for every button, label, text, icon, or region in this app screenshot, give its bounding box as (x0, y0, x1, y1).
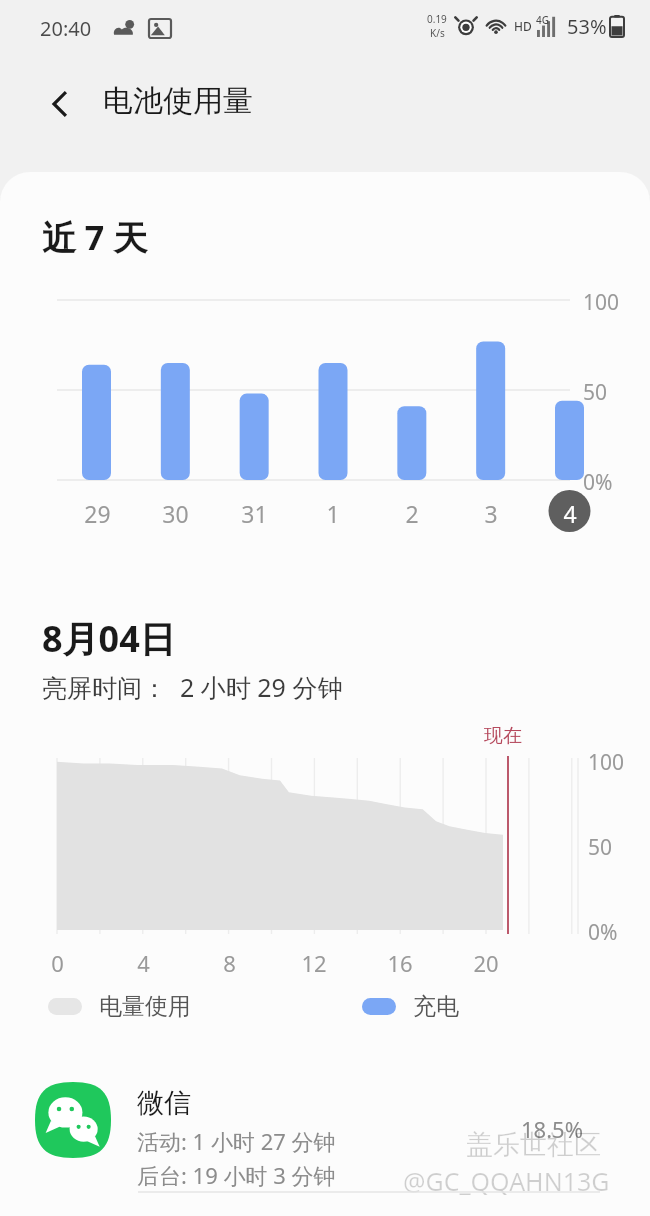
staticText: 后台: 19 小时 3 分钟 (137, 1160, 336, 1190)
staticText: 18.5% (521, 1114, 583, 1144)
staticText: K/s (430, 26, 445, 40)
staticText: 活动: 1 小时 27 分钟 (137, 1126, 336, 1156)
staticText: 亮屏时间： 2 小时 29 分钟 (42, 670, 343, 704)
staticText: 20 (473, 948, 499, 976)
staticText: 50 (588, 833, 613, 862)
staticText: 31 (241, 498, 268, 529)
staticText: 0% (588, 918, 618, 947)
staticText: 30 (162, 498, 189, 529)
staticText: 50 (583, 378, 608, 407)
button[interactable]: 微信 (0, 1060, 650, 1195)
staticText: 充电 (413, 992, 459, 1021)
staticText: 电量使用 (99, 992, 191, 1021)
staticText: 12 (301, 948, 327, 976)
staticText: 0% (583, 468, 613, 497)
button[interactable]: 返回 (30, 74, 90, 134)
staticText: 0 (51, 948, 64, 976)
staticText: HD (514, 18, 532, 34)
staticText: 16 (387, 948, 413, 976)
staticText: 8月04日 (42, 614, 176, 663)
staticText: 100 (588, 748, 625, 777)
staticText: 盖乐世社区 (466, 1128, 601, 1162)
staticText: 2 (405, 498, 419, 529)
staticText: @GC_QQAHN13G (403, 1164, 610, 1198)
staticText: 100 (583, 288, 620, 317)
staticText: 20:40 (40, 15, 92, 42)
staticText: 29 (84, 498, 111, 529)
staticText: 微信 (137, 1086, 191, 1120)
staticText: 电池使用量 (103, 82, 253, 120)
staticText: 8 (223, 948, 236, 976)
staticText: 3 (484, 498, 498, 529)
staticText: 0.19 (427, 12, 447, 26)
staticText: 近 7 天 (42, 214, 148, 260)
staticText: 现在 (484, 724, 522, 748)
staticText: 4 (563, 498, 577, 529)
staticText: 1 (326, 498, 340, 529)
staticText: 53% (567, 13, 607, 40)
staticText: 4 (137, 948, 150, 976)
staticText: 4G (536, 13, 549, 27)
